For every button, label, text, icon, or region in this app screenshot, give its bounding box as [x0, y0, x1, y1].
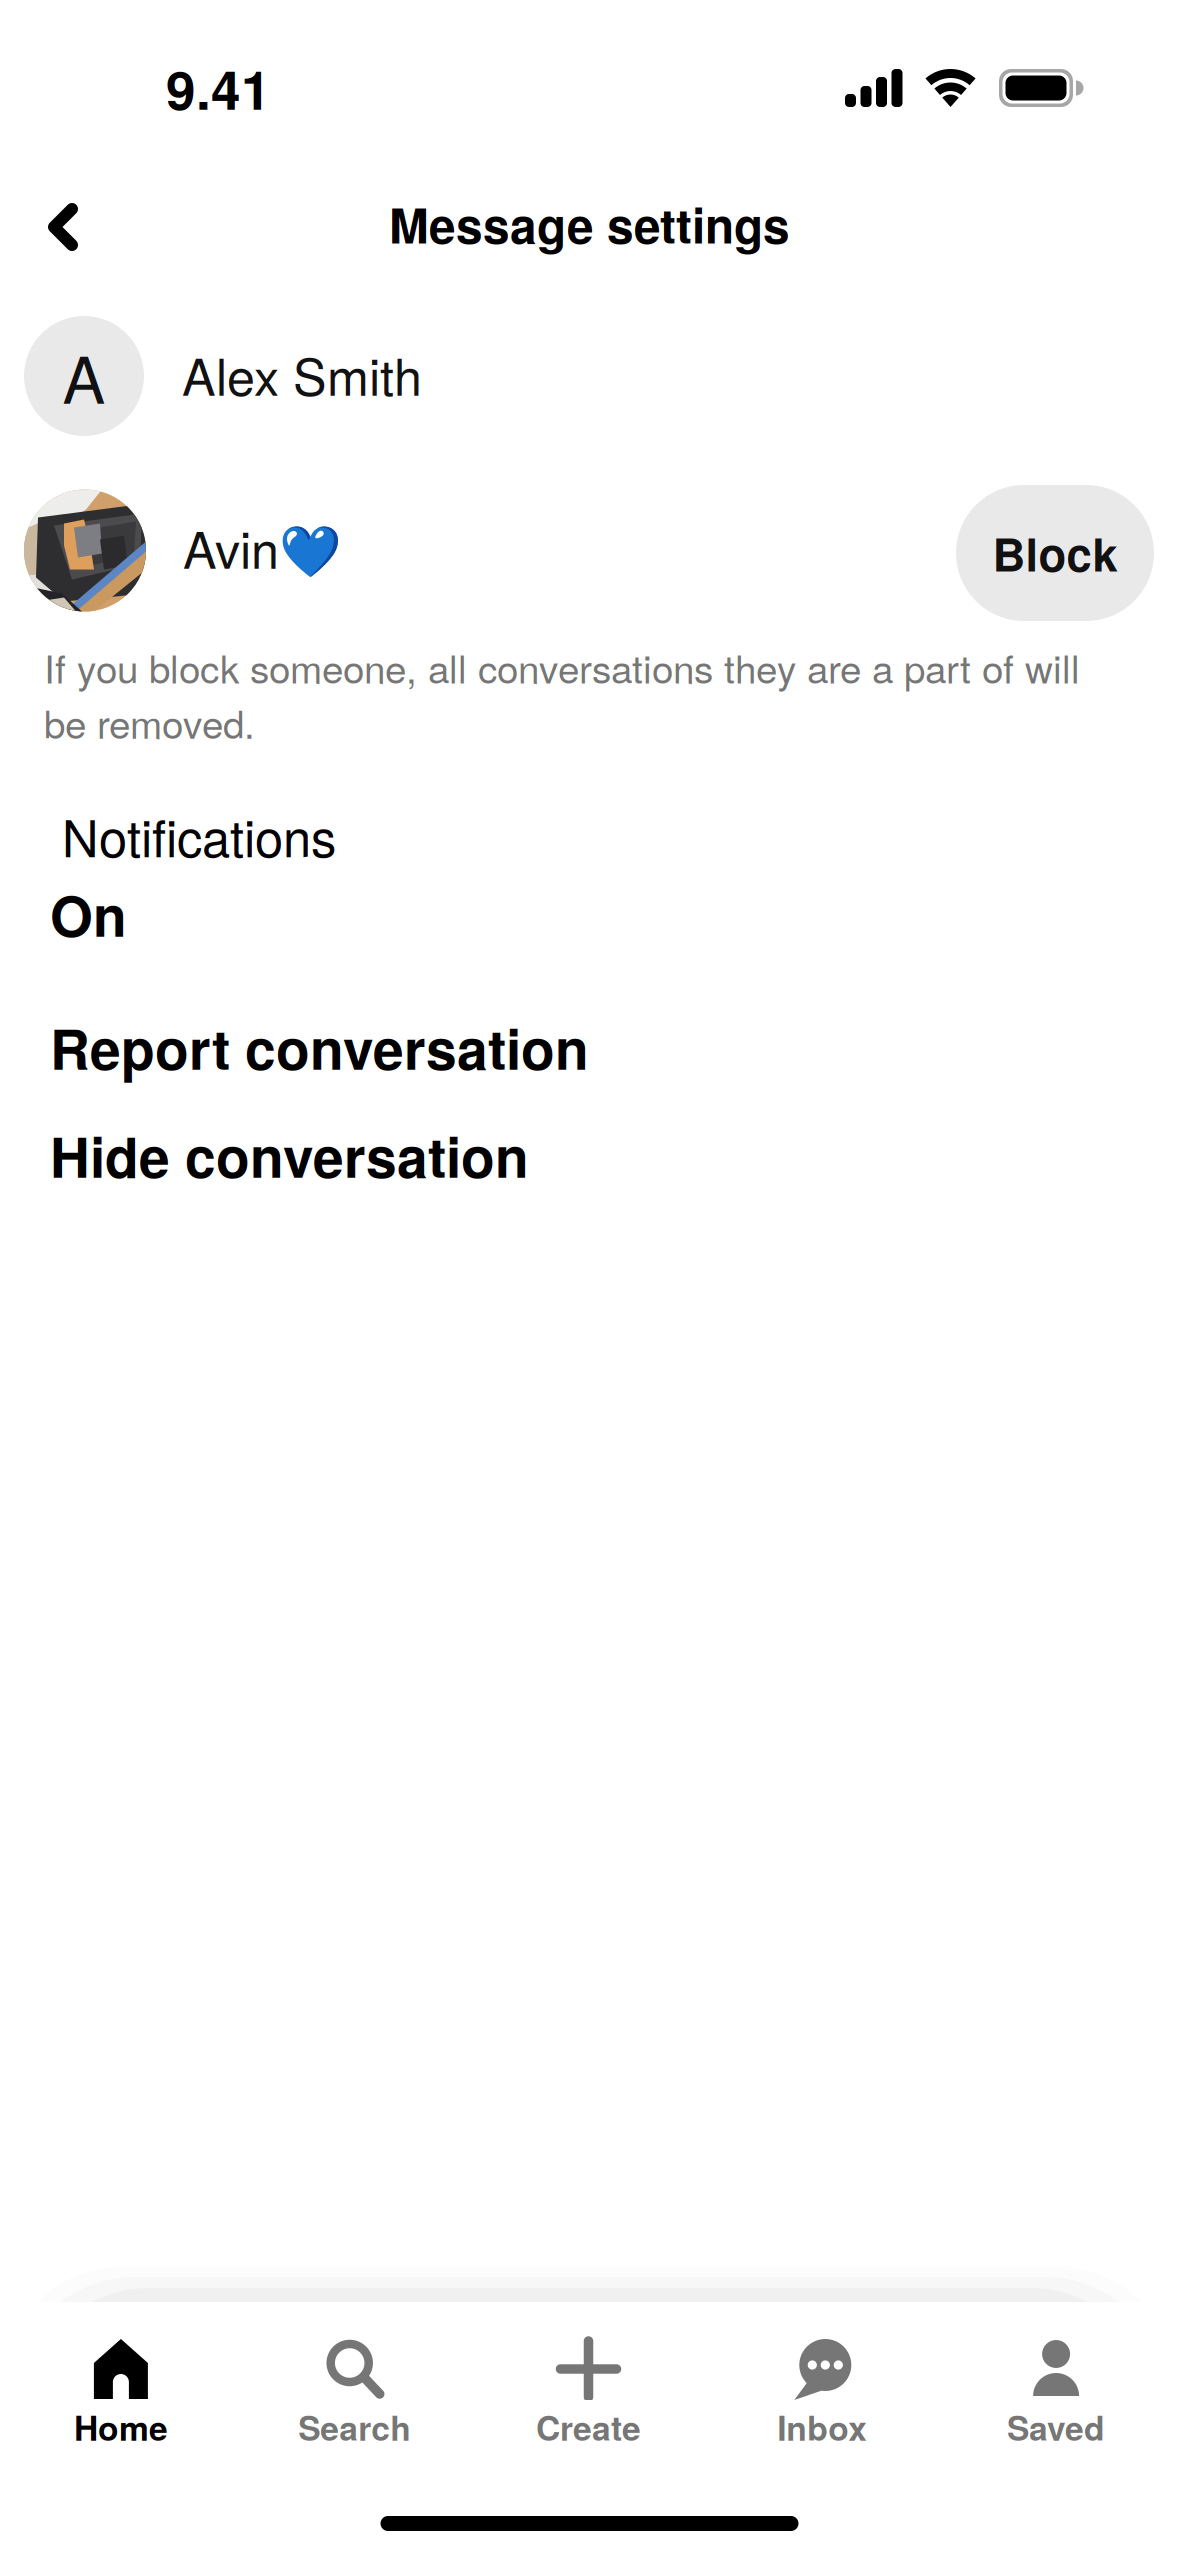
staticText: A: [62, 330, 105, 422]
button[interactable]: A: [0, 316, 1179, 436]
staticText: Inbox: [777, 2403, 867, 2451]
staticText: Saved: [1007, 2403, 1105, 2451]
staticText: Home: [74, 2403, 168, 2451]
button[interactable]: Back: [0, 190, 132, 258]
button[interactable]: Home: [4, 2302, 238, 2556]
button[interactable]: Block: [956, 485, 1154, 621]
staticText: Report conversation: [50, 1008, 589, 1087]
staticText: Notifications: [62, 799, 336, 872]
staticText: Message settings: [389, 190, 790, 258]
button[interactable]: On: [0, 875, 1179, 954]
staticText: On: [50, 875, 127, 954]
button[interactable]: Inbox: [705, 2302, 939, 2556]
staticText: 9.41: [166, 50, 271, 126]
button[interactable]: Create: [472, 2302, 705, 2556]
button[interactable]: Report conversation: [0, 1008, 1179, 1087]
staticText: Avin💙: [183, 511, 342, 583]
staticText: Alex Smith: [182, 338, 422, 410]
button[interactable]: Hide conversation: [0, 1116, 1179, 1195]
staticText: Block: [992, 520, 1117, 585]
staticText: Create: [536, 2403, 641, 2451]
staticText: If you block someone, all conversations …: [44, 639, 1080, 750]
staticText: Hide conversation: [50, 1116, 529, 1195]
button[interactable]: Search: [238, 2302, 472, 2556]
button[interactable]: Saved: [939, 2302, 1173, 2556]
staticText: Search: [298, 2403, 411, 2451]
